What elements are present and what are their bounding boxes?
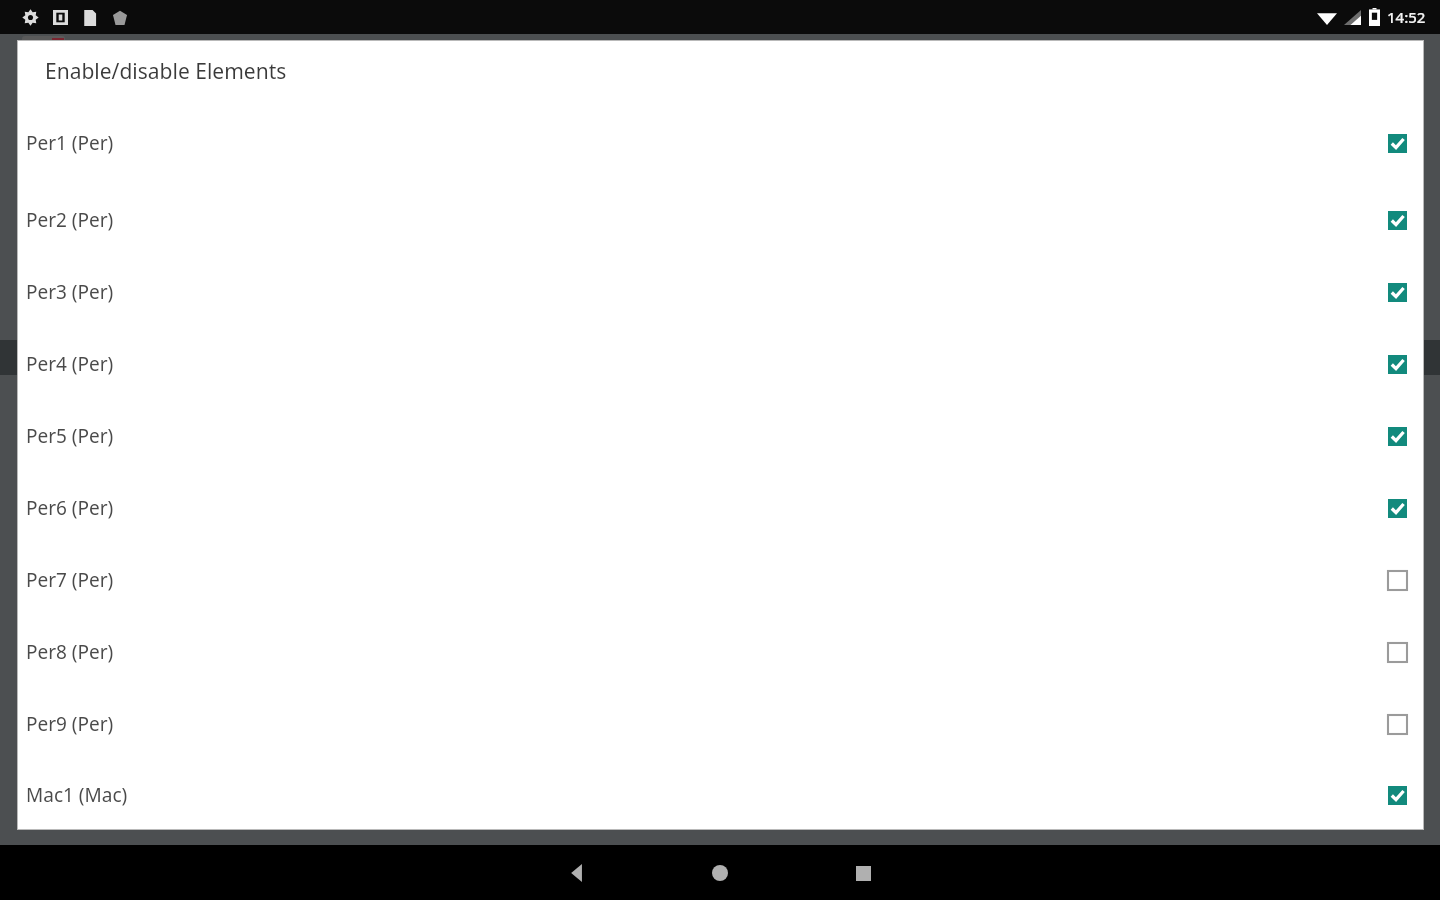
staticText: Per6 (Per) (26, 495, 114, 521)
staticText: Per3 (Per) (26, 279, 114, 305)
staticText: 14:52 (1387, 7, 1426, 27)
staticText: Per4 (Per) (26, 351, 114, 377)
button[interactable]: Per1 (Per) (17, 102, 1424, 184)
staticText: Enable/disable Elements (45, 57, 287, 86)
staticText: Per8 (Per) (26, 639, 114, 665)
button[interactable]: Per5 (Per) (17, 400, 1424, 472)
button[interactable]: Per2 (Per) (17, 184, 1424, 256)
button[interactable]: Home (700, 853, 740, 893)
button[interactable]: Per7 (Per) (17, 544, 1424, 616)
staticText: Per1 (Per) (26, 130, 114, 156)
staticText: Per7 (Per) (26, 567, 114, 593)
button[interactable]: Recent apps (843, 853, 883, 893)
staticText: Mac1 (Mac) (26, 782, 128, 808)
button[interactable]: Per8 (Per) (17, 616, 1424, 688)
staticText: Per2 (Per) (26, 207, 114, 233)
button[interactable]: Per6 (Per) (17, 472, 1424, 544)
button[interactable]: Mac1 (Mac) (17, 760, 1424, 830)
staticText: Per9 (Per) (26, 711, 114, 737)
button[interactable]: Per3 (Per) (17, 256, 1424, 328)
button[interactable]: Per4 (Per) (17, 328, 1424, 400)
button[interactable]: Per9 (Per) (17, 688, 1424, 760)
button[interactable]: Back (558, 853, 598, 893)
staticText: Per5 (Per) (26, 423, 114, 449)
